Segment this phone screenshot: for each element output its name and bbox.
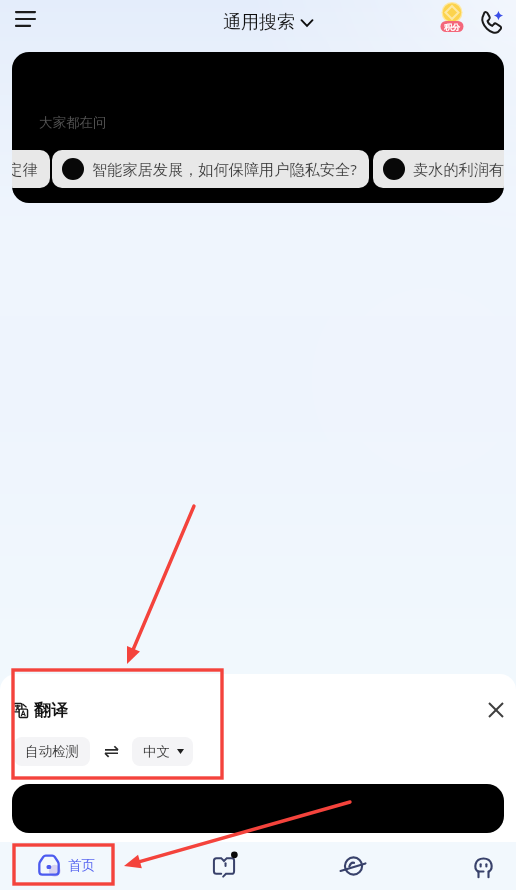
button[interactable]: Library (196, 842, 252, 890)
staticText: 翻译 (34, 700, 68, 721)
button[interactable]: 智能家居发展，如何保障用户隐私安全? (52, 150, 369, 188)
button[interactable]: 首页 (30, 847, 103, 883)
staticText: 大家都在问 (39, 114, 107, 131)
button[interactable]: Profile (455, 842, 511, 890)
button[interactable]: 通用搜索 (219, 5, 317, 40)
button[interactable]: Search input (12, 784, 504, 833)
button[interactable]: Swap languages (95, 737, 127, 766)
staticText: 自然定律 (12, 160, 38, 179)
button[interactable]: Discover (325, 842, 381, 890)
staticText: 通用搜索 (223, 11, 295, 34)
button[interactable]: 自动检测 (14, 737, 90, 766)
staticText: 卖水的利润有多高真的暴利吗 (413, 160, 504, 179)
button[interactable]: Menu (6, 0, 44, 38)
staticText: 中文 (143, 743, 170, 760)
staticText: 积分 (444, 22, 460, 32)
staticText: 智能家居发展，如何保障用户隐私安全? (92, 159, 357, 180)
button[interactable]: Close (477, 691, 514, 728)
staticText: 自动检测 (25, 743, 79, 760)
staticText: 首页 (68, 857, 95, 874)
button[interactable]: Call assistant (470, 2, 510, 42)
button[interactable]: Points (432, 0, 472, 37)
button[interactable]: 中文 (132, 737, 193, 766)
button[interactable]: 卖水的利润有多高真的暴利吗 (373, 150, 504, 188)
button[interactable]: 自然定律 (12, 150, 50, 188)
